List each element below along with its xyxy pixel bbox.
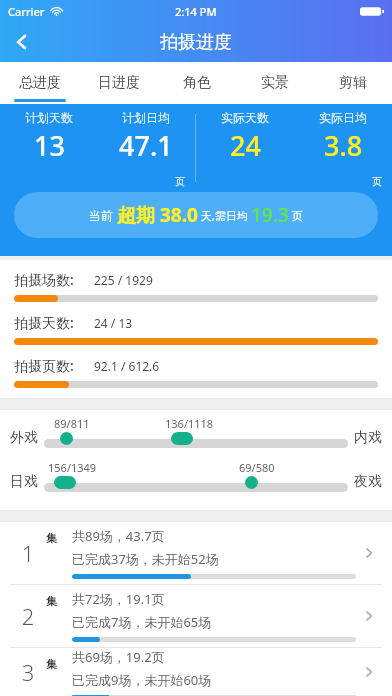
button[interactable]: 当前 bbox=[14, 192, 378, 238]
staticText: 集 bbox=[46, 531, 57, 545]
staticText: 共69场，19.2页 bbox=[72, 648, 165, 666]
button[interactable]: 日进度 bbox=[79, 62, 158, 104]
staticText: 日戏 bbox=[10, 473, 38, 491]
staticText: 拍摄天数: bbox=[14, 313, 74, 332]
staticText: 实际天数 bbox=[221, 110, 269, 125]
staticText: 内戏 bbox=[354, 429, 382, 447]
button[interactable]: Back bbox=[0, 22, 44, 62]
button[interactable]: 2 bbox=[0, 584, 392, 647]
button[interactable]: Slider thumb 69/580 bbox=[245, 476, 258, 489]
staticText: 共89场，43.7页 bbox=[72, 527, 165, 545]
staticText: Carrier bbox=[8, 4, 45, 19]
staticText: 拍摄进度 bbox=[160, 31, 232, 54]
staticText: 已完成37场，未开始52场 bbox=[72, 550, 219, 568]
staticText: 47.1 bbox=[119, 127, 173, 164]
staticText: 已完成7场，未开始65场 bbox=[72, 613, 212, 631]
staticText: 69/580 bbox=[239, 460, 275, 475]
staticText: 已完成9场，未开始60场 bbox=[72, 671, 212, 689]
staticText: 页 bbox=[289, 208, 303, 223]
staticText: 2 bbox=[10, 601, 46, 631]
staticText: 天,需日均 bbox=[198, 208, 251, 223]
staticText: 总进度 bbox=[19, 74, 61, 92]
staticText: 225 / 1929 bbox=[94, 272, 153, 288]
staticText: 共72场，19.1页 bbox=[72, 590, 165, 608]
staticText: 外戏 bbox=[10, 429, 38, 447]
staticText: 角色 bbox=[183, 74, 211, 92]
staticText: 计划天数 bbox=[25, 110, 73, 125]
button[interactable]: Slider thumb 136/1118 bbox=[171, 432, 193, 445]
button[interactable]: 实景 bbox=[236, 62, 314, 104]
staticText: 实际日均 bbox=[319, 110, 367, 125]
staticText: 2:14 PM bbox=[175, 4, 217, 19]
staticText: 38.0 bbox=[160, 202, 198, 228]
staticText: 剪辑 bbox=[339, 74, 367, 92]
staticText: 1 bbox=[10, 538, 46, 568]
staticText: 计划日均 bbox=[122, 110, 170, 125]
staticText: 13 bbox=[34, 127, 65, 164]
button[interactable]: Slider thumb 89/811 bbox=[60, 432, 73, 445]
staticText: 集 bbox=[46, 657, 57, 671]
staticText: 超期 bbox=[117, 202, 160, 228]
staticText: 19.3 bbox=[251, 202, 289, 228]
button[interactable]: 角色 bbox=[158, 62, 236, 104]
staticText: 3.8 bbox=[324, 127, 363, 164]
staticText: 日进度 bbox=[98, 74, 140, 92]
staticText: 89/811 bbox=[54, 416, 90, 431]
button[interactable]: 3 bbox=[0, 647, 392, 696]
staticText: 页 bbox=[372, 175, 382, 188]
staticText: 136/1118 bbox=[165, 416, 214, 431]
button[interactable]: 1 bbox=[0, 522, 392, 584]
staticText: 当前 bbox=[89, 207, 117, 223]
staticText: 156/1349 bbox=[48, 460, 97, 475]
button[interactable]: 总进度 bbox=[0, 62, 79, 104]
staticText: 夜戏 bbox=[354, 473, 382, 491]
button[interactable]: 剪辑 bbox=[314, 62, 392, 104]
staticText: 24 / 13 bbox=[94, 315, 133, 331]
staticText: 3 bbox=[10, 657, 46, 687]
button[interactable]: Slider thumb 156/1349 bbox=[54, 476, 76, 489]
staticText: 集 bbox=[46, 594, 57, 608]
staticText: 实景 bbox=[261, 74, 289, 92]
staticText: 24 bbox=[230, 127, 261, 164]
staticText: 页 bbox=[175, 175, 185, 188]
staticText: 92.1 / 612.6 bbox=[94, 358, 160, 374]
staticText: 拍摄场数: bbox=[14, 270, 74, 289]
staticText: 拍摄页数: bbox=[14, 356, 74, 375]
